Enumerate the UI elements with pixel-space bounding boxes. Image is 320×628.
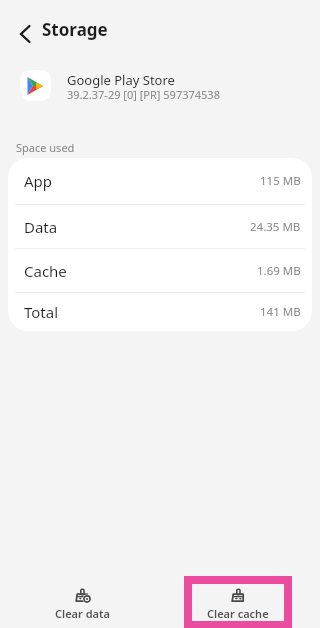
button[interactable]: Clear data xyxy=(37,586,127,621)
staticText: 39.2.37-29 [0] [PR] 597374538 xyxy=(67,87,220,102)
staticText: Total xyxy=(24,302,59,322)
staticText: Google Play Store xyxy=(67,71,175,89)
button[interactable]: Clear cache xyxy=(193,586,283,621)
staticText: 24.35 MB xyxy=(250,219,301,235)
button[interactable] xyxy=(8,17,41,50)
staticText: App xyxy=(24,171,53,191)
button[interactable]: App xyxy=(24,158,301,204)
staticText: Clear data xyxy=(55,606,110,621)
button[interactable]: Cache xyxy=(24,249,301,292)
staticText: 115 MB xyxy=(260,173,301,189)
staticText: Cache xyxy=(24,261,67,281)
staticText: Clear cache xyxy=(207,606,269,621)
button[interactable]: Data xyxy=(24,205,301,248)
button[interactable]: Total xyxy=(24,293,301,331)
staticText: 141 MB xyxy=(260,304,301,320)
staticText: Space used xyxy=(16,140,75,155)
staticText: 1.69 MB xyxy=(257,263,301,279)
staticText: Storage xyxy=(42,18,108,41)
staticText: Data xyxy=(24,217,58,237)
